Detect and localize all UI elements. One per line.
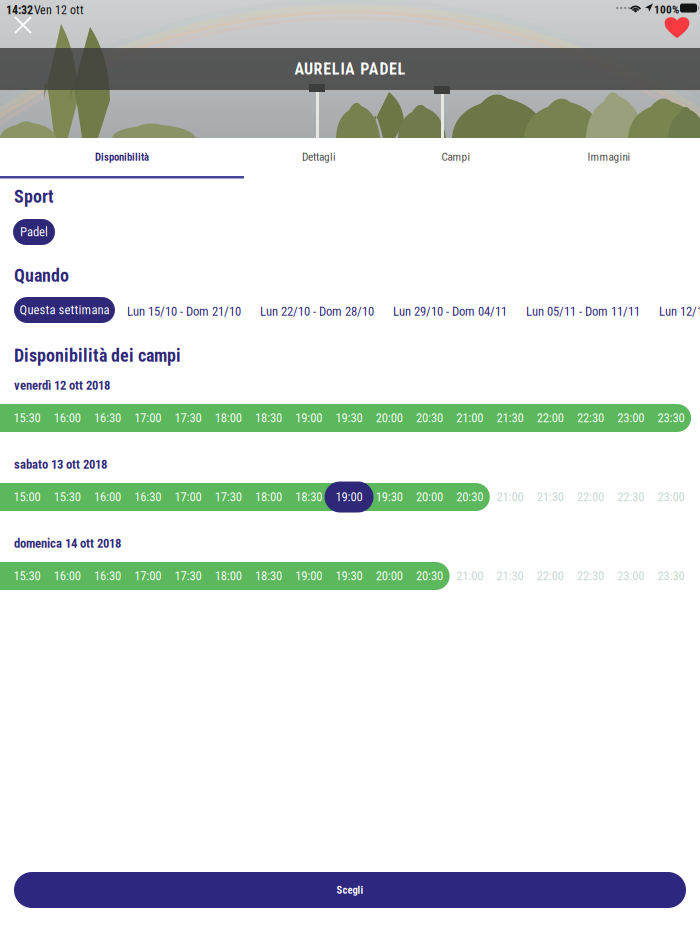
staticText: 20:00 [376, 569, 403, 583]
button[interactable]: 17:00 [128, 560, 168, 591]
staticText: 100% [654, 3, 679, 16]
staticText: Questa settimana [19, 303, 109, 317]
staticText: venerdì 12 ott 2018 [14, 378, 110, 393]
staticText: 21:00 [496, 490, 523, 504]
button[interactable]: 20:00 [369, 402, 409, 433]
button[interactable]: 16:00 [47, 402, 87, 433]
button[interactable]: 17:30 [168, 402, 208, 433]
button[interactable]: 17:30 [168, 560, 208, 591]
button[interactable]: 19:30 [329, 560, 369, 591]
button[interactable]: Dettagli [244, 138, 394, 180]
staticText: 23:00 [617, 411, 644, 425]
staticText: Quando [14, 265, 69, 286]
button[interactable]: Lun 22/10 - Dom 28/10 [260, 304, 374, 319]
staticText: Lun 12/1 [659, 304, 700, 319]
button[interactable]: 21:00 [450, 560, 490, 591]
button[interactable]: 18:30 [248, 560, 288, 591]
button[interactable]: 21:00 [450, 402, 490, 433]
staticText: 19:00 [295, 569, 322, 583]
staticText: 19:00 [335, 490, 362, 504]
button[interactable]: Scegli [14, 872, 686, 908]
button[interactable]: 19:00 [289, 560, 329, 591]
button[interactable]: 18:00 [208, 402, 248, 433]
staticText: 21:30 [496, 411, 523, 425]
button[interactable]: Lun 05/11 - Dom 11/11 [526, 304, 640, 319]
staticText: 15:30 [13, 411, 40, 425]
button[interactable]: Lun 15/10 - Dom 21/10 [127, 304, 241, 319]
button[interactable]: 19:00 [289, 402, 329, 433]
button[interactable]: Lun 29/10 - Dom 04/11 [393, 304, 507, 319]
button[interactable]: Padel [13, 219, 55, 245]
staticText: 22:00 [577, 490, 604, 504]
button[interactable]: 15:30 [7, 402, 47, 433]
button[interactable]: 16:00 [47, 560, 87, 591]
button[interactable]: Campi [394, 138, 518, 180]
button[interactable]: 18:00 [208, 560, 248, 591]
button[interactable]: Lun 12/1 [659, 304, 700, 319]
staticText: 20:00 [416, 490, 443, 504]
button[interactable]: 20:00 [369, 560, 409, 591]
button[interactable]: 22:30 [570, 402, 610, 433]
button[interactable]: 22:00 [530, 402, 570, 433]
button[interactable]: 16:30 [128, 481, 168, 512]
button[interactable]: 20:00 [409, 481, 449, 512]
button[interactable]: 18:00 [248, 481, 288, 512]
button[interactable]: 21:30 [490, 560, 530, 591]
button[interactable]: 22:30 [611, 481, 651, 512]
button[interactable]: Disponibilità [0, 138, 244, 180]
staticText: 17:00 [134, 569, 161, 583]
button[interactable]: 22:00 [530, 560, 570, 591]
staticText: 18:00 [215, 569, 242, 583]
button[interactable]: 23:00 [611, 560, 651, 591]
staticText: 17:30 [174, 569, 201, 583]
button[interactable]: 16:00 [87, 481, 127, 512]
staticText: 17:00 [174, 490, 201, 504]
button[interactable]: 17:00 [168, 481, 208, 512]
staticText: Campi [441, 150, 470, 164]
button[interactable]: Questa settimana [14, 297, 115, 323]
button[interactable]: Chiudi [9, 11, 37, 39]
button[interactable]: 21:30 [490, 402, 530, 433]
staticText: 20:30 [416, 411, 443, 425]
button[interactable]: Immagini [518, 138, 700, 180]
staticText: 19:00 [295, 411, 322, 425]
button[interactable]: Preferito [659, 11, 695, 43]
staticText: 17:30 [215, 490, 242, 504]
button[interactable]: 23:30 [651, 560, 691, 591]
staticText: 18:30 [255, 411, 282, 425]
staticText: 16:00 [54, 569, 81, 583]
button[interactable]: 21:30 [530, 481, 570, 512]
staticText: 16:30 [94, 569, 121, 583]
button[interactable]: 23:30 [651, 402, 691, 433]
button[interactable]: 16:30 [87, 402, 127, 433]
staticText: 19:30 [335, 569, 362, 583]
button[interactable]: 17:00 [128, 402, 168, 433]
button[interactable]: 15:00 [7, 481, 47, 512]
button[interactable]: 17:30 [208, 481, 248, 512]
staticText: 16:30 [134, 490, 161, 504]
button[interactable]: 18:30 [248, 402, 288, 433]
button[interactable]: 18:30 [289, 481, 329, 512]
button[interactable]: 16:30 [87, 560, 127, 591]
button[interactable]: 20:30 [409, 560, 449, 591]
button[interactable]: 15:30 [7, 560, 47, 591]
staticText: Sport [14, 186, 54, 207]
button[interactable]: 19:30 [369, 481, 409, 512]
staticText: 17:00 [134, 411, 161, 425]
staticText: 22:00 [537, 569, 564, 583]
staticText: 21:30 [537, 490, 564, 504]
button[interactable]: 23:00 [651, 481, 691, 512]
button[interactable]: 23:00 [611, 402, 651, 433]
staticText: 22:30 [577, 569, 604, 583]
button[interactable]: 22:30 [570, 560, 610, 591]
button[interactable]: 20:30 [409, 402, 449, 433]
staticText: Lun 22/10 - Dom 28/10 [260, 304, 374, 319]
button[interactable]: 20:30 [450, 481, 490, 512]
button[interactable]: 21:00 [490, 481, 530, 512]
staticText: 19:30 [376, 490, 403, 504]
button[interactable]: 22:00 [570, 481, 610, 512]
button[interactable]: 19:00 [329, 481, 369, 512]
staticText: 17:30 [174, 411, 201, 425]
button[interactable]: 15:30 [47, 481, 87, 512]
button[interactable]: 19:30 [329, 402, 369, 433]
